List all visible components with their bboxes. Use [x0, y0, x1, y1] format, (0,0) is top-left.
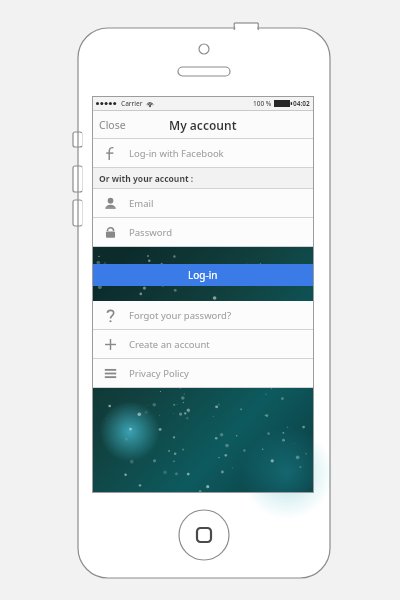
button[interactable]: Email	[92, 189, 314, 218]
staticText: Password	[129, 226, 172, 239]
staticText: Log-in	[188, 268, 218, 282]
button[interactable]: Close	[92, 111, 133, 139]
staticText: Privacy Policy	[129, 367, 189, 380]
staticText: Email	[129, 197, 154, 210]
staticText: 100 %	[253, 99, 272, 108]
button[interactable]: Password	[92, 218, 314, 247]
button[interactable]: Create an account	[92, 330, 314, 359]
staticText: Create an account	[129, 338, 210, 351]
staticText: Carrier	[121, 99, 143, 108]
staticText: 04:02	[293, 99, 310, 108]
staticText: Or with your account :	[99, 173, 194, 185]
staticText: Log-in with Facebook	[129, 147, 224, 160]
staticText: My account	[169, 117, 237, 133]
button[interactable]: Log-in	[92, 264, 314, 286]
button[interactable]: Privacy Policy	[92, 359, 314, 388]
staticText: Forgot your password?	[129, 309, 232, 322]
button[interactable]: Forgot your password?	[92, 301, 314, 330]
staticText: Close	[99, 118, 126, 132]
button[interactable]: Log-in with Facebook	[92, 139, 314, 168]
